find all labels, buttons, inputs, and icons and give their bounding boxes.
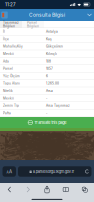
button[interactable]: Page settings xyxy=(2,166,16,177)
staticText: Nitelik xyxy=(3,89,13,93)
staticText: Antalya xyxy=(46,30,58,33)
staticText: Gökçeören xyxy=(46,45,63,48)
button[interactable]: Translate this page xyxy=(0,117,94,128)
staticText: Mevkii xyxy=(3,52,14,56)
staticText: 1.265.00 xyxy=(46,82,59,85)
staticText: İl xyxy=(3,30,5,33)
button[interactable]: Back xyxy=(0,183,19,195)
staticText: Mahalle/Köy xyxy=(3,45,23,48)
staticText: İlçe xyxy=(3,37,9,41)
staticText: Arsa xyxy=(46,89,53,93)
staticText: Arsa Taşınmaz xyxy=(46,104,70,107)
staticText: - xyxy=(46,111,47,115)
button[interactable]: a.parselsorgu.tkgm.gov.tr xyxy=(18,166,91,177)
staticText: A xyxy=(9,169,12,174)
staticText: Yüz Ölçüm xyxy=(3,74,20,78)
staticText: Taşınmaz Bilgileri xyxy=(3,21,19,28)
button[interactable]: Parsel Bilgileri xyxy=(22,21,44,28)
staticText: Kılınçlı xyxy=(46,52,57,56)
staticText: Pafta xyxy=(3,111,11,115)
staticText: Mevkii xyxy=(3,96,14,100)
staticText: Translate this page xyxy=(34,120,66,125)
button[interactable]: Taşınmaz Bilgileri xyxy=(0,21,22,28)
staticText: Consulta Bilgisi xyxy=(29,12,65,18)
button[interactable]: Bookmarks xyxy=(56,183,75,195)
button[interactable]: Forward xyxy=(19,183,38,195)
staticText: a.parselsorgu.tkgm.gov.tr xyxy=(33,169,74,174)
staticText: Tapu Alanı xyxy=(3,82,20,85)
staticText: 1057 xyxy=(46,67,53,70)
button[interactable]: Share xyxy=(38,183,56,195)
button[interactable]: Tabs xyxy=(75,183,94,195)
staticText: 11:27 xyxy=(5,2,16,7)
staticText: Ada xyxy=(3,59,9,63)
button[interactable]: More options xyxy=(85,9,94,21)
staticText: 108 xyxy=(46,59,51,63)
staticText: Zemin Tip xyxy=(3,104,19,107)
staticText: A xyxy=(6,170,8,174)
staticText: Kaş xyxy=(46,37,52,41)
button[interactable]: Site logo xyxy=(0,9,9,21)
staticText: 6 xyxy=(46,74,48,78)
staticText: - xyxy=(46,96,47,100)
staticText: Parsel Bilgileri xyxy=(27,21,39,28)
staticText: Parsel xyxy=(3,67,13,70)
